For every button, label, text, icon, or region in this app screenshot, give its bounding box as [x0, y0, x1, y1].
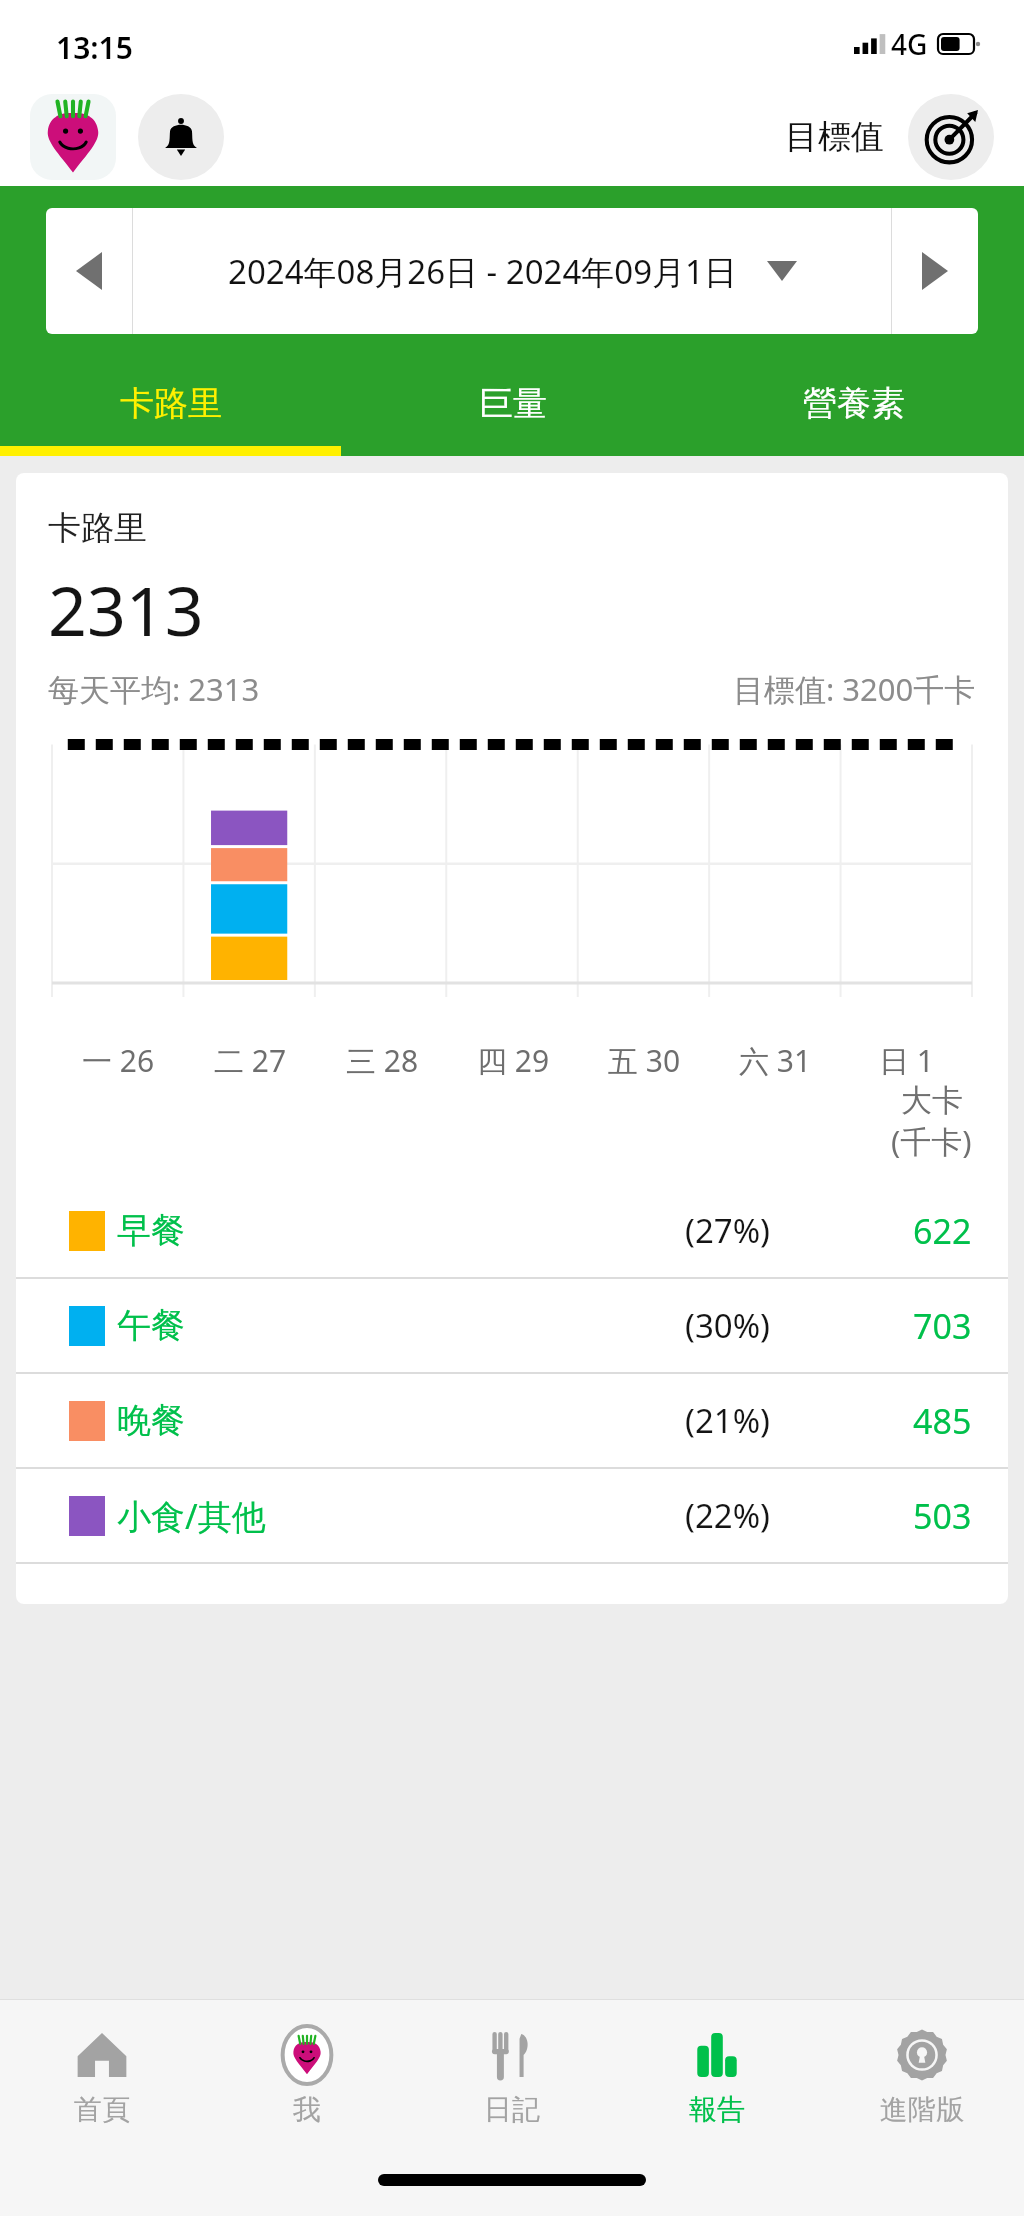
button[interactable]: 進階版 — [819, 2000, 1024, 2152]
staticText: 日 1 — [879, 1040, 934, 1081]
button[interactable]: 日記 — [409, 2000, 614, 2152]
button[interactable]: 報告 — [614, 2000, 819, 2152]
staticText: 大卡 — [901, 1081, 963, 1120]
staticText: (30%) — [685, 1303, 770, 1348]
button[interactable]: 卡路里 — [0, 360, 342, 446]
staticText: 二 27 — [214, 1040, 287, 1081]
button[interactable]: Goals — [908, 94, 994, 180]
button[interactable]: 首頁 — [0, 2000, 204, 2152]
staticText: (千卡) — [891, 1120, 972, 1162]
button[interactable]: 晚餐 — [16, 1374, 1008, 1467]
staticText: 485 — [913, 1398, 972, 1444]
staticText: 四 29 — [477, 1040, 550, 1081]
staticText: 我 — [293, 2092, 321, 2127]
staticText: 一 26 — [82, 1040, 155, 1081]
button[interactable]: 巨量 — [342, 360, 683, 446]
button[interactable]: 我 — [204, 2000, 409, 2152]
staticText: 622 — [913, 1208, 972, 1254]
staticText: 503 — [913, 1493, 972, 1539]
staticText: 每天平均: 2313 — [48, 668, 260, 710]
staticText: 卡路里 — [120, 382, 222, 425]
staticText: 巨量 — [479, 382, 547, 425]
staticText: 六 31 — [739, 1040, 812, 1081]
button[interactable]: 營養素 — [683, 360, 1024, 446]
staticText: 卡路里 — [48, 507, 147, 549]
staticText: 三 28 — [346, 1040, 419, 1081]
button[interactable]: Next week — [892, 208, 978, 334]
staticText: (27%) — [685, 1208, 770, 1253]
staticText: 早餐 — [117, 1209, 185, 1252]
staticText: 五 30 — [608, 1040, 681, 1081]
staticText: 13:15 — [56, 27, 133, 68]
staticText: 目標值 — [785, 116, 884, 158]
button[interactable]: 2024年08月26日 - 2024年09月1日 — [133, 208, 891, 334]
button[interactable]: 午餐 — [16, 1279, 1008, 1372]
button[interactable]: Notifications — [138, 94, 224, 180]
staticText: (22%) — [685, 1493, 770, 1538]
button[interactable]: 小食/其他 — [16, 1469, 1008, 1562]
staticText: 首頁 — [74, 2092, 130, 2127]
staticText: 目標值: 3200千卡 — [733, 668, 976, 710]
staticText: (21%) — [685, 1398, 770, 1443]
staticText: 晚餐 — [117, 1399, 185, 1442]
staticText: 日記 — [484, 2092, 540, 2127]
staticText: 報告 — [689, 2092, 745, 2127]
staticText: 4G — [891, 25, 928, 63]
button[interactable]: Previous week — [46, 208, 132, 334]
staticText: 2024年08月26日 - 2024年09月1日 — [228, 249, 737, 294]
button[interactable]: 早餐 — [16, 1184, 1008, 1277]
staticText: 小食/其他 — [117, 1493, 266, 1539]
staticText: 營養素 — [803, 382, 905, 425]
staticText: 進階版 — [880, 2092, 964, 2127]
button[interactable]: Profile — [30, 94, 116, 180]
staticText: 703 — [913, 1303, 972, 1349]
staticText: 2313 — [48, 563, 204, 656]
staticText: 午餐 — [117, 1304, 185, 1347]
